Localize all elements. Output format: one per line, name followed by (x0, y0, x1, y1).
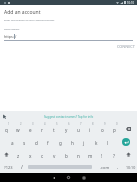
staticText: Add an account (4, 9, 41, 16)
staticText: Server address (4, 28, 20, 31)
button[interactable]: ?123 (0, 161, 16, 173)
button[interactable]: p (108, 122, 120, 135)
staticText: 10:10 (127, 1, 135, 5)
staticText: ?123 (4, 165, 13, 170)
staticText: / (21, 164, 23, 171)
staticText: Enter the location of your Nextcloud ser… (4, 18, 55, 21)
button[interactable]: y (60, 122, 72, 135)
staticText: v (53, 153, 56, 159)
staticText: r (41, 127, 43, 133)
button[interactable]: l (102, 135, 114, 148)
staticText: 1 (8, 122, 10, 126)
button[interactable]: k (90, 135, 102, 148)
button[interactable]: u (72, 122, 84, 135)
button[interactable]: x (24, 148, 36, 161)
button[interactable]: n (72, 148, 84, 161)
staticText: o (101, 127, 104, 133)
staticText: u (77, 127, 80, 133)
staticText: w (16, 127, 20, 133)
staticText: j (83, 140, 85, 146)
staticText: Suggest contact names? Tap for info (44, 115, 94, 119)
staticText: 8 (92, 122, 94, 126)
staticText: p (113, 127, 116, 133)
staticText: g (59, 140, 62, 146)
button[interactable]: q (0, 122, 12, 135)
button[interactable]: r (36, 122, 48, 135)
staticText: l (107, 140, 109, 146)
staticText: 9 (104, 122, 106, 126)
staticText: s (23, 140, 26, 146)
button[interactable]: f (42, 135, 54, 148)
button[interactable]: ! (96, 148, 108, 161)
button[interactable]: . (112, 161, 124, 173)
staticText: 2 (20, 122, 22, 126)
staticText: q (5, 127, 8, 133)
button[interactable]: Suggest contact names? Tap for info (42, 113, 96, 121)
staticText: e (29, 127, 32, 133)
button[interactable]: .com (98, 161, 112, 173)
staticText: c (41, 153, 44, 159)
staticText: CONNECT (117, 44, 135, 49)
staticText: ! (101, 153, 103, 159)
staticText: b (65, 153, 68, 159)
staticText: . (117, 164, 119, 171)
staticText: 4 (44, 122, 46, 126)
button[interactable]: e (24, 122, 36, 135)
button[interactable]: g (54, 135, 66, 148)
staticText: .com (100, 165, 110, 170)
button[interactable]: o (96, 122, 108, 135)
button[interactable]: Shift (0, 148, 12, 161)
button[interactable]: t (48, 122, 60, 135)
button[interactable]: b (60, 148, 72, 161)
staticText: a (11, 140, 14, 146)
staticText: https:// (4, 34, 17, 39)
button[interactable]: w (12, 122, 24, 135)
button[interactable]: ? (108, 148, 120, 161)
button[interactable]: z (12, 148, 24, 161)
staticText: t (53, 127, 55, 133)
button[interactable]: c (36, 148, 48, 161)
staticText: ? (113, 153, 115, 159)
staticText: z (17, 153, 20, 159)
staticText: 3 (32, 122, 34, 126)
button[interactable]: 10:10 (124, 161, 137, 173)
button[interactable]: d (30, 135, 42, 148)
staticText: 7 (80, 122, 82, 126)
staticText: f (47, 140, 49, 146)
staticText: h (71, 140, 74, 146)
button[interactable]: h (66, 135, 78, 148)
button[interactable]: / (16, 161, 28, 173)
staticText: 6 (68, 122, 70, 126)
staticText: m (88, 153, 93, 159)
button[interactable]: Enter (114, 135, 137, 148)
staticText: n (77, 153, 80, 159)
button[interactable]: i (84, 122, 96, 135)
button[interactable]: Recents (76, 173, 91, 182)
button[interactable]: Voice input (1, 113, 8, 120)
button[interactable]: Back (46, 173, 61, 182)
staticText: k (95, 140, 98, 146)
button[interactable]: a (6, 135, 18, 148)
button[interactable]: CONNECT (114, 42, 137, 51)
staticText: 10:10 (126, 165, 136, 170)
staticText: y (65, 127, 68, 133)
button[interactable]: s (18, 135, 30, 148)
button[interactable]: Home (61, 173, 76, 182)
staticText: 5 (56, 122, 58, 126)
button[interactable]: j (78, 135, 90, 148)
button[interactable]: v (48, 148, 60, 161)
button[interactable]: Shift (120, 148, 137, 161)
staticText: 0 (116, 122, 118, 126)
button[interactable]: Backspace (120, 122, 137, 135)
button[interactable]: m (84, 148, 96, 161)
staticText: i (89, 127, 91, 133)
staticText: d (35, 140, 38, 146)
staticText: x (29, 153, 32, 159)
